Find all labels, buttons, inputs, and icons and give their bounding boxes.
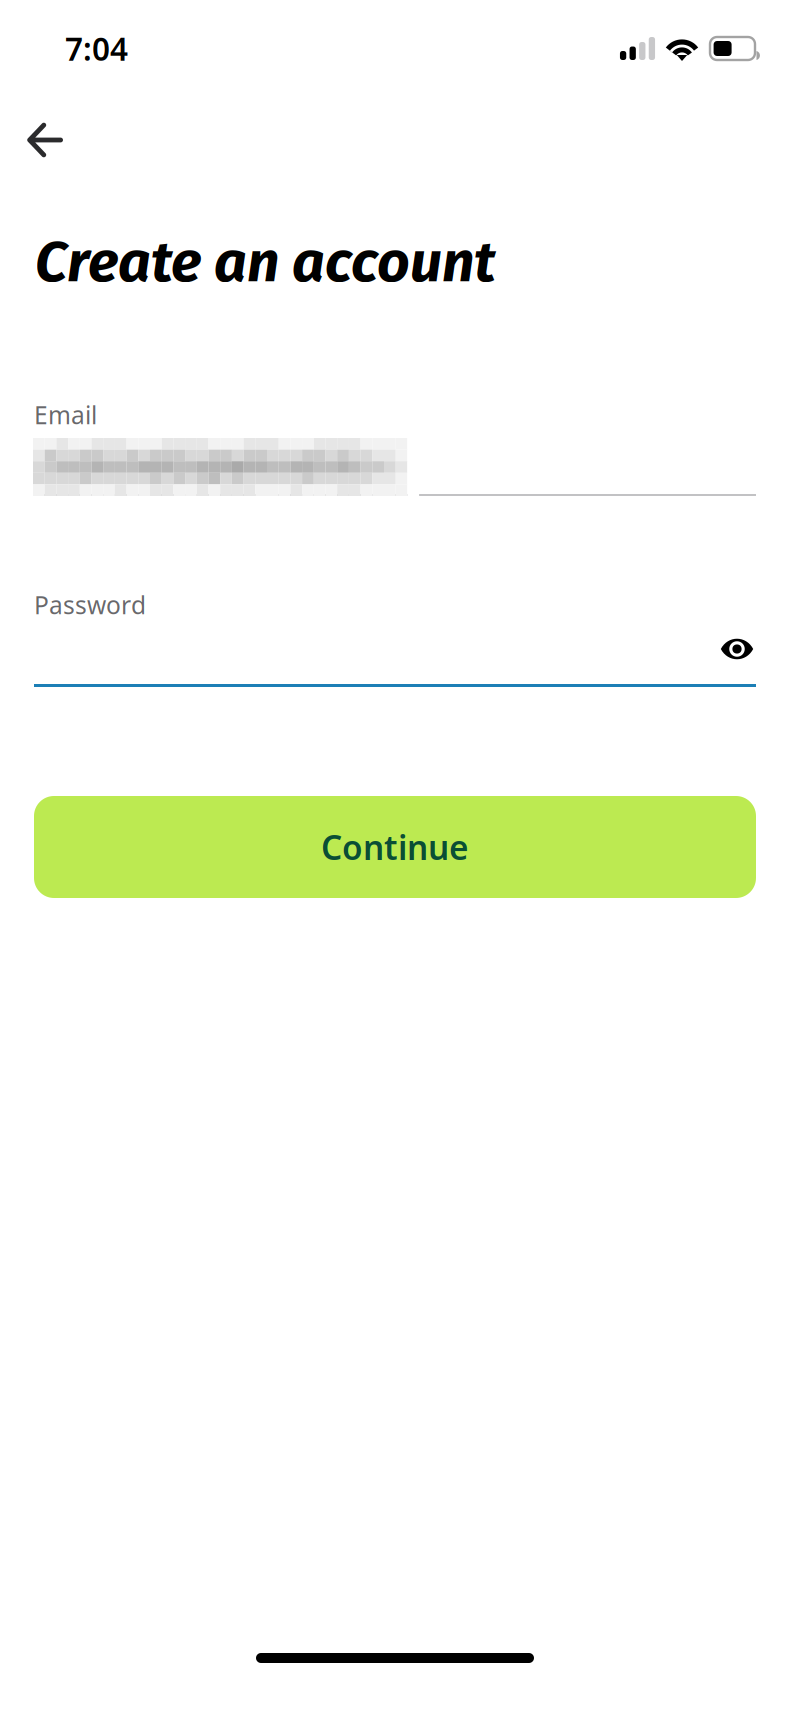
staticText: 7:04 (65, 27, 128, 70)
staticText: Email (34, 398, 97, 431)
staticText: Create an account (35, 228, 495, 296)
button[interactable]: Continue (34, 796, 756, 898)
button[interactable]: Show password (709, 625, 765, 673)
staticText: Password (34, 588, 146, 621)
staticText: Continue (321, 824, 469, 870)
button[interactable]: Back (0, 96, 91, 184)
